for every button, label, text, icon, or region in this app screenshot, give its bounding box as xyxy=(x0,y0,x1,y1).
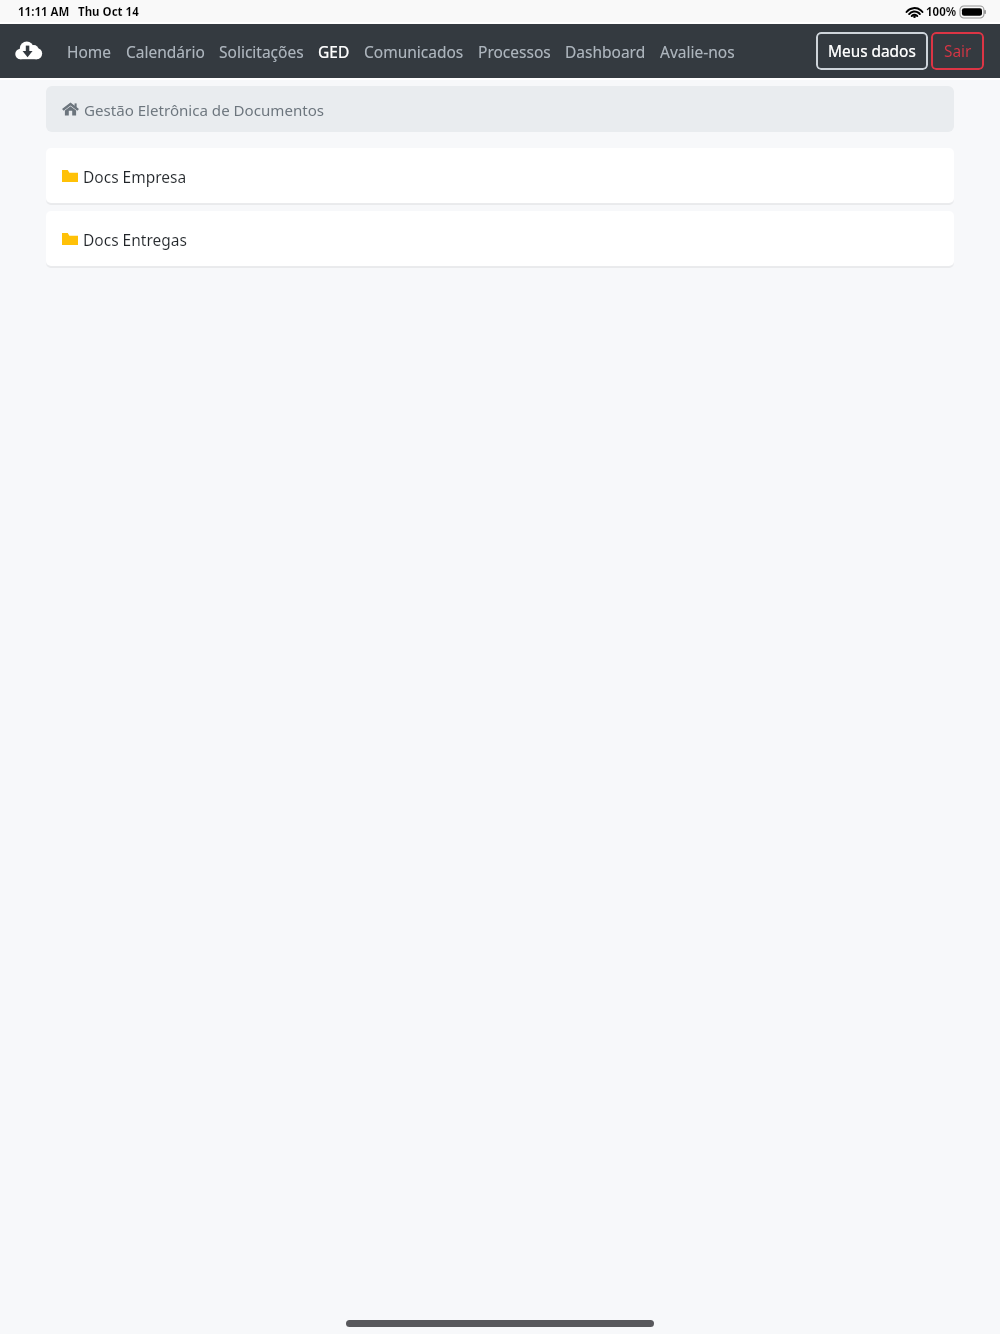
button[interactable]: Calendário xyxy=(119,35,212,68)
staticText: 11:11 AM xyxy=(18,4,70,20)
staticText: Docs Entregas xyxy=(83,229,187,250)
staticText: Solicitações xyxy=(219,41,304,62)
staticText: Sair xyxy=(944,41,972,62)
button[interactable]: Download xyxy=(13,36,43,66)
button[interactable]: Avalie-nos xyxy=(653,35,742,68)
staticText: Dashboard xyxy=(565,41,646,62)
staticText: Comunicados xyxy=(364,41,464,62)
staticText: Calendário xyxy=(126,41,205,62)
button[interactable]: Comunicados xyxy=(357,35,471,68)
button[interactable]: Meus dados xyxy=(816,32,928,70)
button[interactable]: Dashboard xyxy=(558,35,653,68)
button[interactable]: Processos xyxy=(471,35,558,68)
staticText: Avalie-nos xyxy=(660,41,735,62)
staticText: Gestão Eletrônica de Documentos xyxy=(84,100,325,121)
button[interactable]: GED xyxy=(311,35,357,68)
button[interactable]: Solicitações xyxy=(212,35,311,68)
staticText: GED xyxy=(318,41,350,62)
button[interactable]: Docs Entregas xyxy=(46,211,954,266)
staticText: 100% xyxy=(926,4,957,20)
staticText: Docs Empresa xyxy=(83,166,187,187)
staticText: Home xyxy=(67,41,112,62)
button[interactable]: Docs Empresa xyxy=(46,148,954,203)
staticText: Processos xyxy=(478,41,551,62)
staticText: Thu Oct 14 xyxy=(78,4,139,20)
button[interactable]: Sair xyxy=(931,32,984,70)
staticText: Meus dados xyxy=(828,41,916,62)
button[interactable]: Gestão Eletrônica de Documentos xyxy=(46,86,954,132)
button[interactable]: Home xyxy=(60,35,119,68)
